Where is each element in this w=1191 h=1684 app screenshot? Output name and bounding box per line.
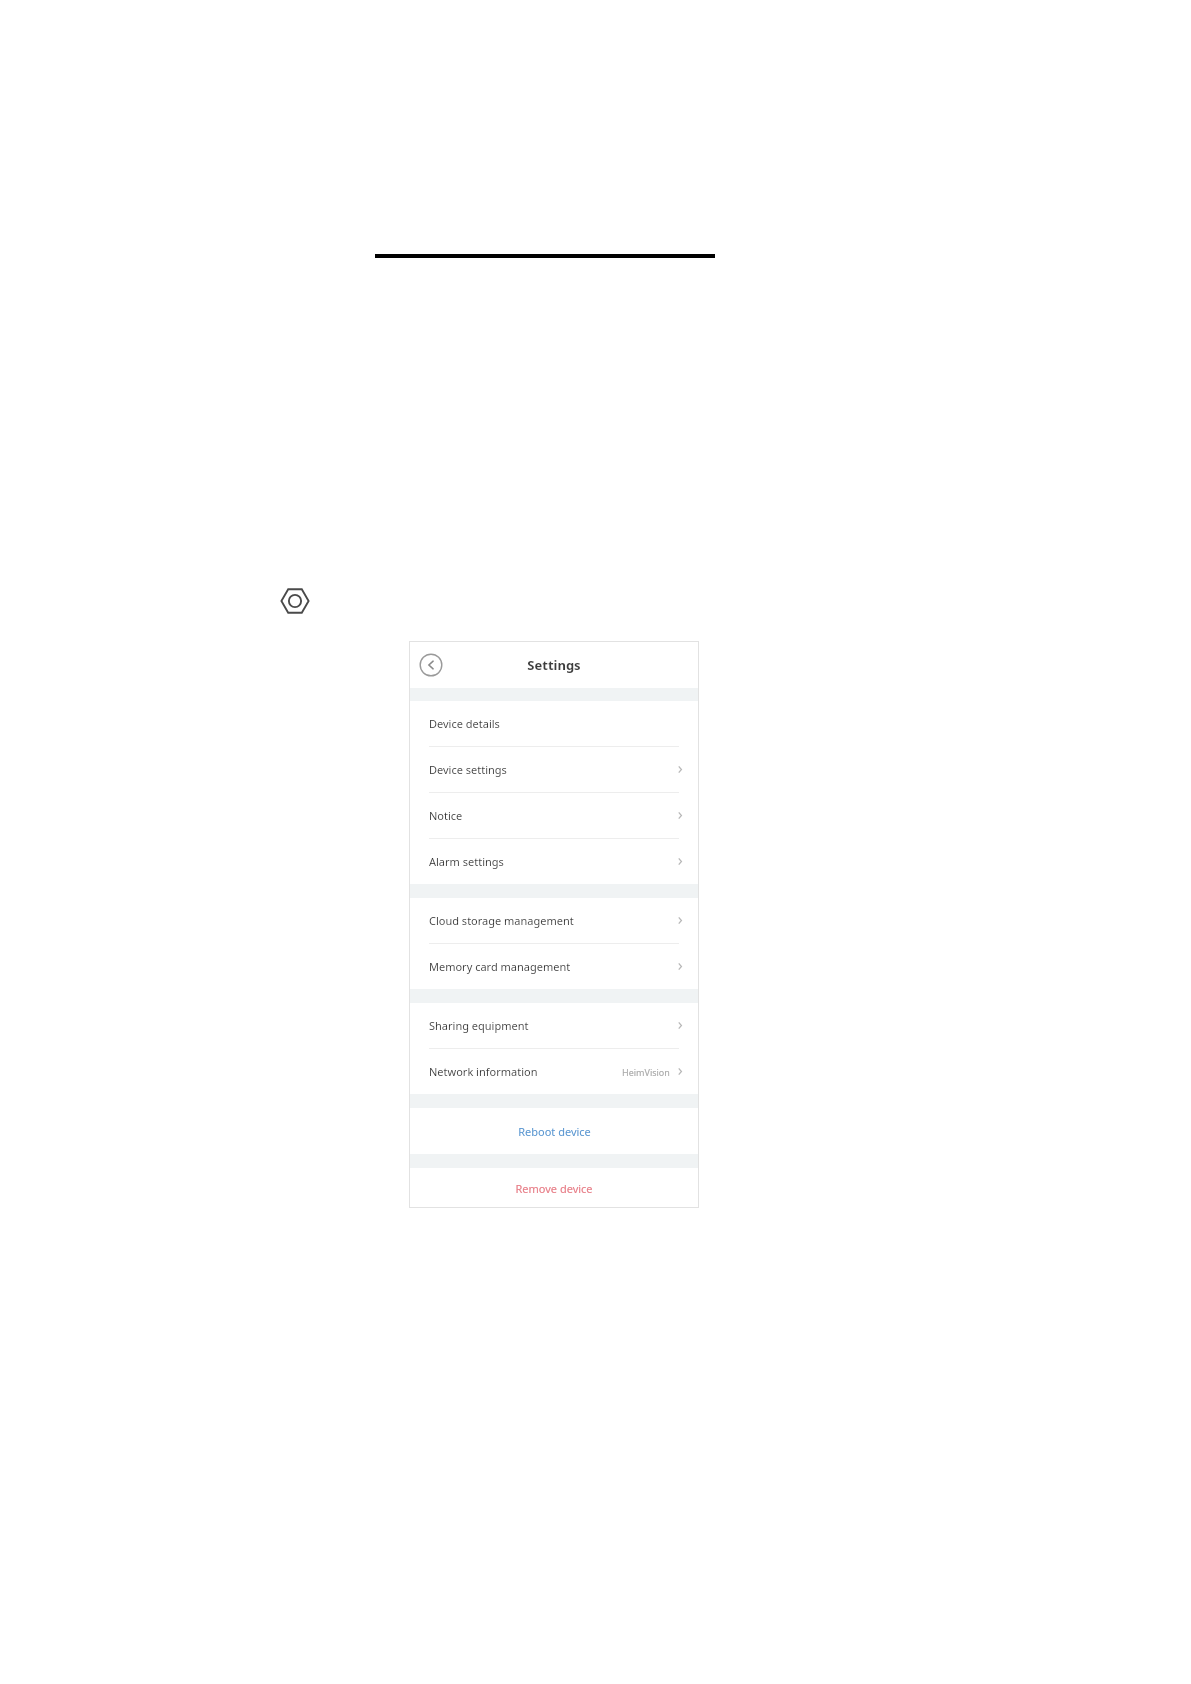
button[interactable]: Alarm settings (409, 839, 699, 884)
button[interactable]: Network information (409, 1049, 699, 1094)
staticText: Network information (429, 1064, 538, 1079)
staticText: Device settings (429, 762, 507, 777)
button[interactable]: Back (419, 653, 443, 677)
staticText: Sharing equipment (429, 1018, 529, 1033)
button[interactable]: Device details (409, 701, 699, 746)
staticText: Cloud storage management (429, 913, 574, 928)
staticText: Settings (527, 656, 581, 674)
staticText: Memory card management (429, 959, 571, 974)
button[interactable]: Device settings (409, 747, 699, 792)
button[interactable]: Remove device (409, 1168, 699, 1208)
button[interactable]: Memory card management (409, 944, 699, 989)
staticText: Remove device (515, 1181, 593, 1196)
button[interactable]: Reboot device (409, 1108, 699, 1154)
staticText: Reboot device (518, 1124, 591, 1139)
other: Settings icon (278, 584, 312, 618)
button[interactable]: Sharing equipment (409, 1003, 699, 1048)
staticText: HeimVision (622, 1066, 670, 1078)
button[interactable]: Cloud storage management (409, 898, 699, 943)
staticText: Device details (429, 716, 500, 731)
button[interactable]: Notice (409, 793, 699, 838)
staticText: Alarm settings (429, 854, 504, 869)
staticText: Notice (429, 808, 463, 823)
